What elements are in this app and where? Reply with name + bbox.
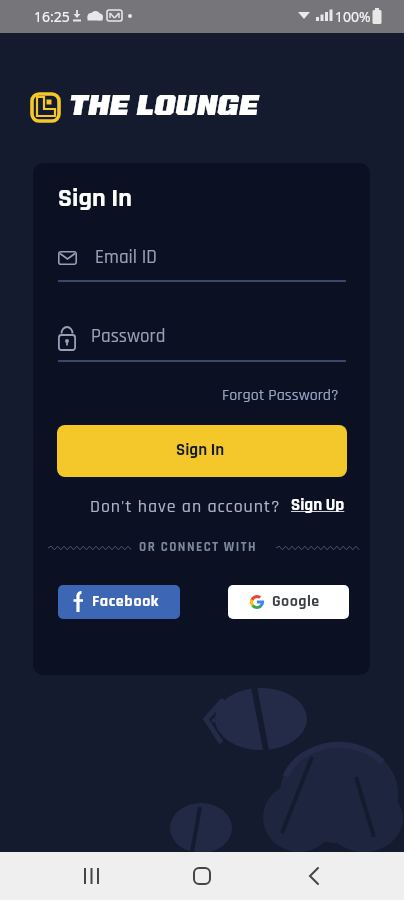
- staticText: Sign Up: [291, 494, 345, 516]
- staticText: Sign In: [176, 439, 225, 461]
- staticText: OR CONNECT WITH: [139, 539, 258, 556]
- staticText: Sign In: [58, 182, 132, 215]
- staticText: Facebook: [92, 591, 160, 611]
- staticText: THE LOUNGE: [68, 89, 258, 120]
- staticText: 100%: [335, 7, 371, 26]
- staticText: Email ID: [95, 245, 157, 269]
- staticText: 16:25: [34, 7, 70, 26]
- staticText: Password: [91, 324, 166, 348]
- staticText: Google: [272, 591, 320, 611]
- staticText: Forgot Password?: [222, 385, 339, 405]
- staticText: Don't have an account?: [90, 495, 281, 518]
